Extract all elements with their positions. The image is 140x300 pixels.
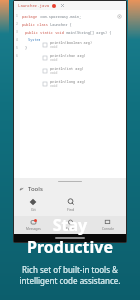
staticText: void xyxy=(50,45,58,49)
staticText: Launcher.java xyxy=(18,3,50,8)
staticText: Console xyxy=(102,227,114,231)
staticText: void xyxy=(50,71,58,75)
staticText: } xyxy=(25,45,28,50)
staticText: println(int arg) xyxy=(50,66,84,71)
staticText: com.sparrowsy.main; xyxy=(38,14,82,19)
button[interactable]: println(char arg) xyxy=(40,51,108,64)
staticText: println(char arg) xyxy=(50,53,86,58)
staticText: System.out.p xyxy=(28,37,54,42)
staticText: 6 xyxy=(16,54,18,58)
button[interactable]: Find xyxy=(52,197,89,213)
button[interactable]: Settings xyxy=(116,13,123,20)
staticText: println(long arg) xyxy=(50,79,86,84)
staticText: 1 xyxy=(16,14,18,18)
staticText: Launcher { xyxy=(48,22,72,27)
staticText: Messages xyxy=(26,227,41,231)
button[interactable]: Git xyxy=(14,197,52,213)
button[interactable]: Console xyxy=(89,218,126,232)
button[interactable]: Messages xyxy=(14,218,52,232)
staticText: 3 xyxy=(16,30,18,34)
button[interactable]: println(boolean arg) xyxy=(40,38,108,51)
staticText: 4 xyxy=(16,38,18,42)
staticText: void xyxy=(50,58,58,62)
button[interactable]: Tools xyxy=(14,182,126,195)
staticText: main(String[] args) { xyxy=(64,30,112,35)
staticText: Editor xyxy=(66,227,75,231)
staticText: void xyxy=(50,84,58,88)
button[interactable]: Launcher.java xyxy=(17,3,57,8)
staticText: package xyxy=(22,14,38,19)
staticText: Rich set of built-in tools & intelligent… xyxy=(8,264,132,286)
button[interactable]: println(long arg) xyxy=(40,77,108,90)
staticText: Find xyxy=(67,207,75,212)
staticText: public static void xyxy=(25,30,64,35)
button[interactable]: Close tab xyxy=(60,3,65,8)
staticText: Stay Productive xyxy=(8,214,132,258)
staticText: Git xyxy=(31,207,36,212)
staticText: 5 xyxy=(16,46,18,50)
staticText: public class xyxy=(22,22,48,27)
staticText: println(boolean arg) xyxy=(50,40,92,45)
button[interactable]: Editor xyxy=(52,218,89,232)
button[interactable]: println(int arg) xyxy=(40,64,108,77)
staticText: 2 xyxy=(16,22,18,26)
staticText: Tools xyxy=(28,185,43,193)
